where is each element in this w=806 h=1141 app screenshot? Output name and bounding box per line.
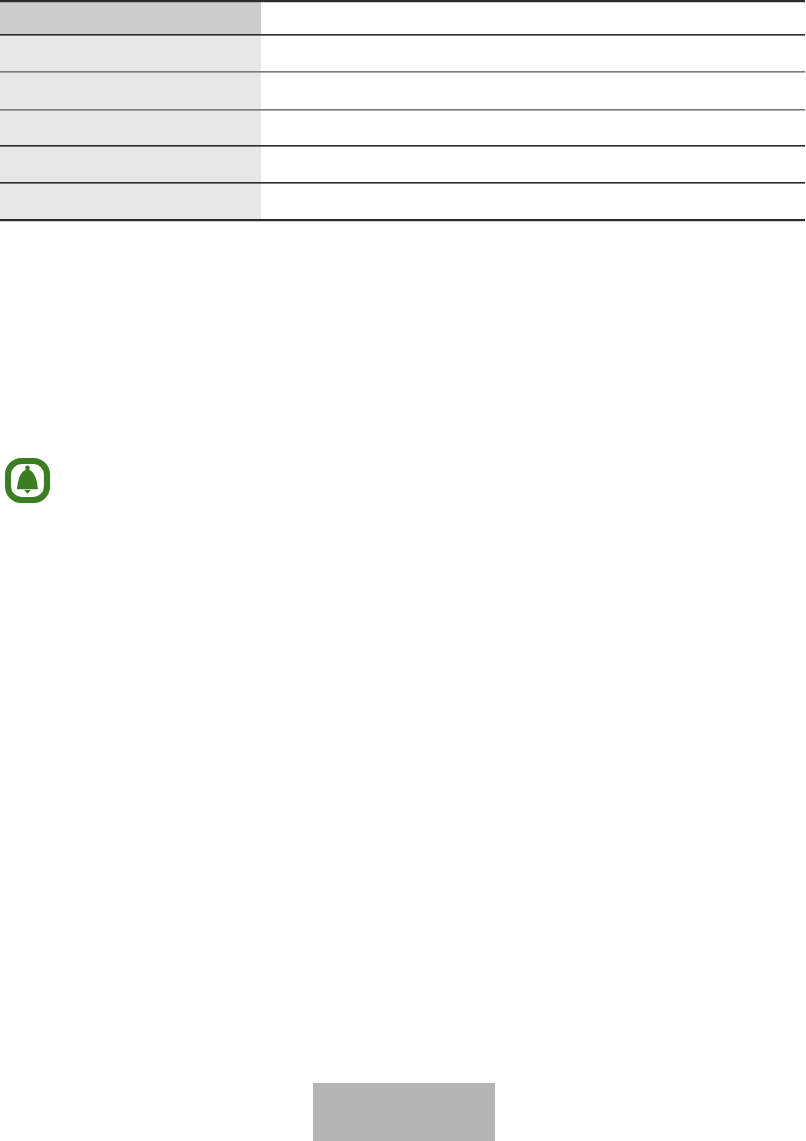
button[interactable] xyxy=(0,72,261,109)
button[interactable] xyxy=(0,2,261,34)
button[interactable] xyxy=(0,35,261,71)
button[interactable] xyxy=(0,146,261,182)
button[interactable]: Notification xyxy=(5,458,50,503)
button[interactable] xyxy=(0,110,261,145)
button[interactable] xyxy=(0,183,261,219)
